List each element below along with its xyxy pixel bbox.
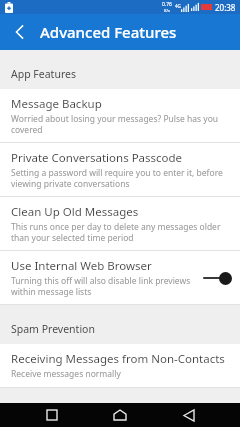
button[interactable]: Use Internal Web Browser (0, 251, 240, 304)
button[interactable]: Back (172, 403, 206, 427)
button[interactable]: Recent apps (35, 403, 69, 427)
staticText: Advanced Features (40, 22, 177, 42)
staticText: Worried about losing your messages? Puls… (11, 113, 232, 135)
staticText: Clean Up Old Messages (11, 204, 139, 220)
staticText: App Features (11, 67, 76, 81)
staticText: K/s (164, 8, 170, 13)
staticText: 20:38 (215, 2, 236, 13)
button[interactable]: Clean Up Old Messages (0, 197, 240, 250)
staticText: Turning this off will also disable link … (11, 275, 196, 297)
staticText: 0.76 (162, 1, 172, 8)
staticText: Setting a password will require you to e… (11, 167, 232, 189)
staticText: This runs once per day to delete any mes… (11, 221, 232, 243)
staticText: Receiving Messages from Non-Contacts (11, 351, 225, 367)
button[interactable]: Message Backup (0, 89, 240, 142)
button[interactable]: Receiving Messages from Non-Contacts (0, 344, 240, 387)
button[interactable]: Use Internal Web Browser toggle (202, 269, 232, 287)
staticText: Use Internal Web Browser (11, 258, 152, 274)
button[interactable]: Home (103, 403, 137, 427)
staticText: Message Backup (11, 96, 102, 112)
staticText: 4G (175, 3, 181, 9)
staticText: Private Conversations Passcode (11, 150, 183, 166)
staticText: Receive messages normally (11, 368, 121, 380)
button[interactable]: Private Conversations Passcode (0, 143, 240, 196)
button[interactable]: Navigate up (8, 21, 30, 43)
staticText: Spam Prevention (11, 322, 95, 336)
